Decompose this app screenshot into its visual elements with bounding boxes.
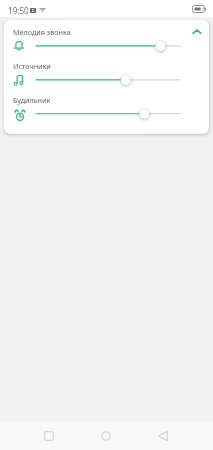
- button[interactable]: Volume slider: [29, 39, 189, 53]
- button[interactable]: Home: [92, 421, 120, 450]
- staticText: Источники: [13, 61, 51, 71]
- staticText: Мелодия звонка: [13, 27, 71, 37]
- button[interactable]: Volume slider: [29, 73, 189, 87]
- button[interactable]: Collapse: [188, 23, 206, 41]
- button[interactable]: Volume slider: [29, 107, 189, 121]
- button[interactable]: Recents: [35, 421, 63, 450]
- button[interactable]: Back: [149, 421, 177, 450]
- staticText: Будильник: [13, 95, 51, 105]
- staticText: 19:50: [8, 5, 29, 16]
